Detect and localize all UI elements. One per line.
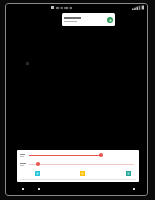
button[interactable]: Recents	[130, 185, 138, 193]
button[interactable]: Open	[62, 13, 115, 26]
button[interactable]: Open	[107, 17, 113, 23]
button[interactable]: Back	[19, 185, 27, 193]
button[interactable]: Brightness	[79, 170, 86, 177]
button[interactable]	[20, 161, 136, 167]
button[interactable]: Bluetooth	[125, 170, 132, 177]
button[interactable]: Wi-Fi	[34, 170, 41, 177]
button[interactable]: Home	[35, 185, 43, 193]
button[interactable]	[20, 152, 136, 158]
